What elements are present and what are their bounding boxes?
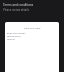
staticText: Please review details (3, 8, 30, 12)
staticText: Terms and conditions (3, 3, 34, 7)
staticText: third lin (7, 38, 15, 41)
staticText: Body text line abc (7, 32, 26, 35)
staticText: Card Title Here (5, 26, 59, 29)
staticText: second line g (7, 35, 21, 38)
